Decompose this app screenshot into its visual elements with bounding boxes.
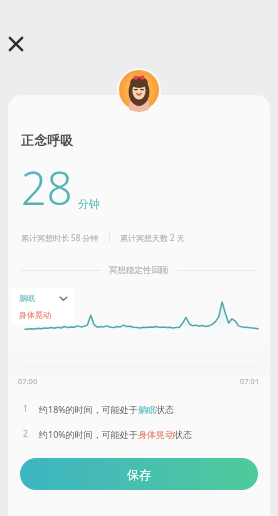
staticText: 28	[21, 157, 73, 218]
staticText: 累计冥想时长 58 分钟	[21, 232, 99, 243]
button[interactable]: 2	[23, 428, 270, 440]
staticText: 累计冥想天数 2 天	[120, 232, 185, 243]
staticText: 07:00	[18, 376, 38, 386]
staticText: 身体晃动	[138, 429, 174, 440]
staticText: 状态	[156, 404, 174, 415]
button[interactable]: 1	[23, 403, 270, 415]
button[interactable]: 身体晃动	[19, 310, 51, 320]
staticText: 07:01	[240, 376, 260, 386]
staticText: 状态	[174, 429, 192, 440]
staticText: 1	[23, 403, 39, 415]
staticText: 躺眠	[19, 293, 35, 303]
button[interactable]: 保存	[20, 458, 258, 490]
staticText: 保存	[127, 467, 151, 482]
staticText: 2	[23, 428, 39, 440]
staticText: 约10%的时间，可能处于	[39, 428, 138, 440]
button[interactable]: 躺眠	[19, 293, 67, 303]
staticText: 躺眠	[138, 404, 156, 415]
staticText: 分钟	[78, 197, 100, 211]
staticText: 冥想稳定性回顾	[109, 265, 169, 276]
button[interactable]: Close	[2, 30, 30, 58]
staticText: 正念呼吸	[21, 132, 73, 148]
staticText: 约18%的时间，可能处于	[39, 403, 138, 415]
